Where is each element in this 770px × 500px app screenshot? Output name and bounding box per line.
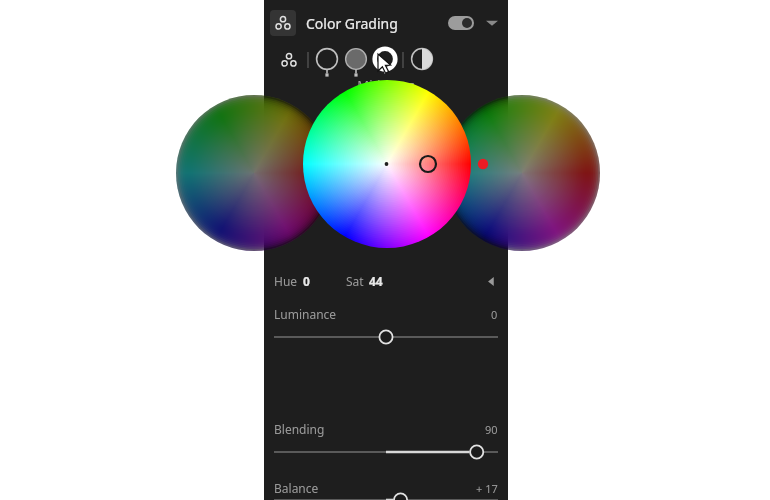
button[interactable]: Midtones <box>343 47 369 73</box>
button[interactable]: Balance <box>264 460 508 500</box>
staticText: 44 <box>369 273 383 289</box>
staticText: 90 <box>485 422 498 437</box>
staticText: Blending <box>274 421 325 437</box>
staticText: Midtones <box>357 76 415 94</box>
button[interactable]: Toggle Color Grading <box>448 16 474 30</box>
staticText: Luminance <box>274 306 337 322</box>
staticText: + 17 <box>476 481 498 496</box>
button[interactable]: Luminance <box>264 294 508 345</box>
button[interactable]: All wheels <box>276 47 302 73</box>
button[interactable]: Hue <box>264 268 508 294</box>
button[interactable]: Global <box>409 47 435 73</box>
staticText: Hue <box>274 273 298 289</box>
staticText: 0 <box>303 273 310 289</box>
button[interactable]: Color Grading icon <box>270 10 296 36</box>
staticText: Color Grading <box>306 14 398 33</box>
button[interactable]: Highlights <box>372 47 398 73</box>
staticText: Sat <box>346 273 364 289</box>
button[interactable]: Color Grading icon <box>264 0 508 46</box>
staticText: Balance <box>274 480 319 496</box>
button[interactable]: Blending <box>264 421 508 460</box>
staticText: 0 <box>491 307 498 322</box>
button[interactable]: Shadows <box>314 47 340 73</box>
button[interactable]: Collapse panel <box>484 15 500 31</box>
button[interactable]: More options <box>484 274 498 288</box>
